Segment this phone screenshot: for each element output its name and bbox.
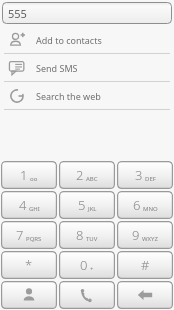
button[interactable]: 4 — [1, 191, 57, 219]
button[interactable]: 6 — [117, 191, 173, 219]
staticText: ABC — [86, 175, 98, 183]
staticText: 2 — [76, 166, 84, 184]
staticText: PQRS — [26, 235, 42, 243]
staticText: DEF — [145, 175, 156, 183]
button[interactable]: Backspace — [117, 281, 173, 309]
staticText: 0 — [80, 256, 88, 274]
button[interactable]: Add to contacts — [0, 26, 174, 53]
button[interactable]: 2 — [59, 161, 115, 189]
button[interactable]: 7 — [1, 221, 57, 249]
staticText: TUV — [86, 235, 98, 243]
staticText: 9 — [132, 226, 140, 244]
button[interactable]: Call — [59, 281, 115, 309]
button[interactable]: Contacts — [1, 281, 57, 309]
button[interactable]: 9 — [117, 221, 173, 249]
staticText: 4 — [19, 196, 27, 214]
button[interactable]: 5 — [59, 191, 115, 219]
staticText: # — [141, 256, 150, 274]
button[interactable]: 1 — [1, 161, 57, 189]
staticText: JKL — [88, 205, 97, 213]
staticText: 6 — [133, 196, 141, 214]
button[interactable]: # — [117, 251, 173, 279]
staticText: 555 — [8, 6, 27, 21]
button[interactable]: 0 — [59, 251, 115, 279]
button[interactable]: 555 — [2, 2, 172, 24]
staticText: Send SMS — [36, 62, 78, 74]
button[interactable]: Search the web — [0, 82, 174, 109]
staticText: 3 — [135, 166, 143, 184]
button[interactable]: 8 — [59, 221, 115, 249]
staticText: + — [90, 265, 94, 273]
staticText: 8 — [76, 226, 84, 244]
staticText: oo — [30, 175, 38, 183]
button[interactable]: 3 — [117, 161, 173, 189]
staticText: 5 — [78, 196, 86, 214]
staticText: Add to contacts — [36, 34, 102, 46]
staticText: Search the web — [36, 90, 101, 102]
staticText: MNO — [143, 205, 158, 213]
staticText: GHI — [29, 205, 40, 213]
button[interactable]: Send SMS — [0, 54, 174, 81]
staticText: * — [25, 256, 33, 274]
button[interactable]: * — [1, 251, 57, 279]
staticText: 7 — [16, 226, 24, 244]
staticText: WXYZ — [142, 235, 158, 243]
staticText: 1 — [20, 166, 28, 184]
